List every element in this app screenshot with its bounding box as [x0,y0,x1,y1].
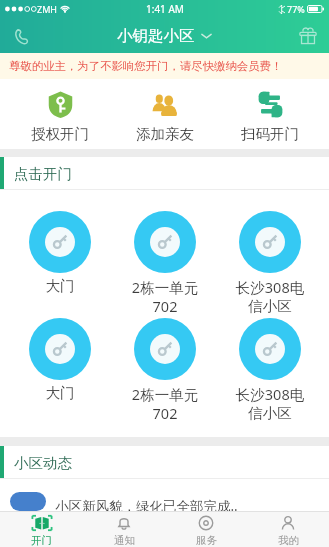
staticText: 1:41 AM [146,2,184,16]
staticText: 大门 [24,277,96,295]
staticText: 开门 [31,534,52,547]
staticText: 长沙308电信小区 [234,384,306,422]
button[interactable]: 2栋一单元702 [112,211,217,318]
button[interactable]: Call service [6,21,36,51]
staticText: 通知 [114,534,135,547]
staticText: 小钥匙小区 [117,26,195,46]
staticText: 尊敬的业主，为了不影响您开门，请尽快缴纳会员费！ [9,59,283,73]
button[interactable]: 2栋一单元702 [112,318,217,425]
button[interactable]: Gifts [293,21,323,51]
staticText: 添加亲友 [136,125,194,143]
button[interactable]: 小钥匙小区 [111,22,218,50]
staticText: 点击开门 [14,165,72,183]
button[interactable]: 扫码开门 [217,90,322,143]
staticText: 77% [287,3,305,15]
staticText: ZMH [37,3,57,15]
button[interactable]: 长沙308电信小区 [217,318,322,425]
staticText: 小区新风貌，绿化已全部完成.. [55,497,238,511]
button[interactable]: 大门 [7,211,112,318]
button[interactable]: 添加亲友 [112,90,217,143]
button[interactable]: 我的 [247,511,329,547]
staticText: 我的 [278,534,299,547]
staticText: 2栋一单元702 [129,277,201,316]
staticText: 扫码开门 [241,125,299,143]
staticText: 授权开门 [31,125,89,143]
staticText: 小区动态 [14,454,72,472]
button[interactable]: 服务 [165,511,247,547]
staticText: 服务 [196,534,217,547]
staticText: 长沙308电信小区 [234,277,306,315]
button[interactable]: 授权开门 [7,90,112,143]
staticText: 大门 [24,384,96,402]
button[interactable]: 长沙308电信小区 [217,211,322,318]
button[interactable]: 小区新风貌，绿化已全部完成.. [0,479,329,511]
button[interactable]: 通知 [83,511,165,547]
staticText: 2栋一单元702 [129,384,201,423]
button[interactable]: 开门 [0,511,83,547]
button[interactable]: 大门 [7,318,112,425]
